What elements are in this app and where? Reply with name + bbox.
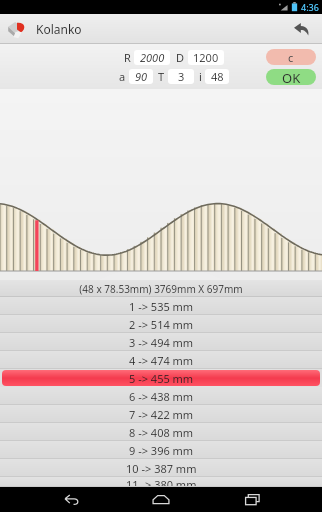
staticText: 7 -> 422 mm [129,407,194,422]
staticText: (48 x 78.53mm) 3769mm X 697mm [79,282,243,296]
staticText: a [119,69,126,84]
button[interactable]: 48 [205,69,229,84]
button[interactable]: 7 -> 422 mm [0,405,322,423]
button[interactable]: Recent apps [232,487,272,512]
staticText: 2000 [140,50,165,65]
staticText: 48 [211,69,224,84]
staticText: 3 [178,69,185,84]
staticText: 11 -> 380 mm [126,477,197,487]
staticText: 9 -> 396 mm [129,443,194,458]
staticText: Kolanko [36,21,82,37]
button[interactable]: 3 [168,69,194,84]
button[interactable]: 2000 [134,50,170,65]
button[interactable]: 10 -> 387 mm [0,459,322,477]
staticText: 1200 [193,50,219,65]
staticText: 1 -> 535 mm [129,299,194,314]
staticText: 8 -> 408 mm [129,425,194,440]
staticText: 4 -> 474 mm [129,353,194,368]
button[interactable]: 5 -> 455 mm [2,370,320,386]
button[interactable]: (48 x 78.53mm) 3769mm X 697mm [0,280,322,297]
button[interactable]: OK [266,69,316,85]
staticText: T [158,69,165,84]
button[interactable]: 6 -> 438 mm [0,387,322,405]
staticText: i [199,69,202,84]
button[interactable]: 1 -> 535 mm [0,297,322,315]
button[interactable]: 2 -> 514 mm [0,315,322,333]
button[interactable]: 8 -> 408 mm [0,423,322,441]
button[interactable]: 90 [129,69,153,84]
button[interactable]: Back [51,487,91,512]
staticText: c [288,50,294,65]
button[interactable]: 11 -> 380 mm [0,477,322,487]
staticText: 10 -> 387 mm [126,461,197,476]
button[interactable]: 4 -> 474 mm [0,351,322,369]
button[interactable]: Back [286,14,316,44]
staticText: 4:36 [301,1,319,13]
staticText: 3 -> 494 mm [129,335,194,350]
button[interactable]: 1200 [188,50,224,65]
button[interactable]: Home [141,487,181,512]
button[interactable]: 9 -> 396 mm [0,441,322,459]
button[interactable]: 3 -> 494 mm [0,333,322,351]
staticText: 2 -> 514 mm [129,317,194,332]
staticText: OK [282,69,301,85]
staticText: 6 -> 438 mm [129,389,194,404]
staticText: R [124,50,131,65]
staticText: 90 [135,69,148,84]
staticText: D [176,50,185,65]
button[interactable]: c [266,49,316,65]
staticText: 5 -> 455 mm [129,371,194,386]
